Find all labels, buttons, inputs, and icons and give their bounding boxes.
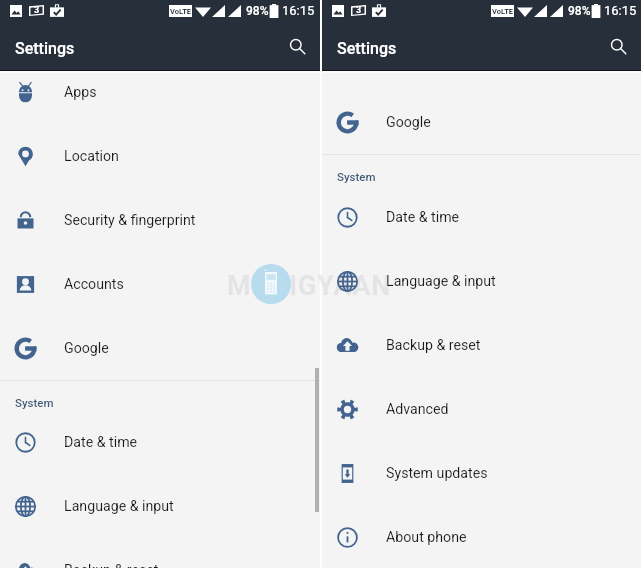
- button[interactable]: Search: [601, 29, 635, 63]
- staticText: Settings: [15, 39, 75, 58]
- staticText: About phone: [386, 529, 467, 546]
- button[interactable]: Location: [0, 124, 320, 188]
- button[interactable]: Date & time: [322, 185, 641, 249]
- staticText: Language & input: [386, 273, 496, 290]
- button[interactable]: Google: [322, 90, 641, 154]
- staticText: Backup & reset: [386, 337, 481, 354]
- staticText: Google: [386, 114, 431, 131]
- button[interactable]: Apps: [0, 60, 320, 124]
- button[interactable]: About phone: [322, 505, 641, 568]
- button[interactable]: Search: [280, 29, 314, 63]
- button[interactable]: Google: [0, 316, 320, 380]
- staticText: 16:15: [604, 3, 637, 18]
- button[interactable]: Accounts: [0, 252, 320, 316]
- button[interactable]: Security & fingerprint: [0, 188, 320, 252]
- button[interactable]: Date & time: [0, 410, 320, 474]
- staticText: VoLTE: [492, 7, 514, 16]
- button[interactable]: Language & input: [322, 249, 641, 313]
- staticText: Apps: [64, 84, 97, 101]
- staticText: 3: [34, 5, 40, 16]
- staticText: Security & fingerprint: [64, 212, 196, 229]
- staticText: 16:15: [282, 3, 315, 18]
- staticText: Date & time: [64, 434, 138, 451]
- staticText: Backup & reset: [64, 562, 159, 568]
- staticText: Language & input: [64, 498, 174, 515]
- button[interactable]: Backup & reset: [0, 538, 320, 568]
- staticText: Accounts: [64, 276, 124, 293]
- staticText: Location: [64, 148, 119, 165]
- staticText: Settings: [337, 39, 397, 58]
- button[interactable]: Language & input: [0, 474, 320, 538]
- staticText: 98%: [246, 4, 269, 18]
- staticText: 98%: [568, 4, 591, 18]
- button[interactable]: System updates: [322, 441, 641, 505]
- staticText: Google: [64, 340, 109, 357]
- button[interactable]: Advanced: [322, 377, 641, 441]
- staticText: VoLTE: [170, 7, 192, 16]
- staticText: Advanced: [386, 401, 449, 418]
- staticText: System: [337, 170, 376, 183]
- staticText: Date & time: [386, 209, 460, 226]
- staticText: System updates: [386, 465, 488, 482]
- staticText: 3: [356, 5, 362, 16]
- staticText: System: [15, 396, 54, 409]
- staticText: MOBIGYAAN: [227, 270, 392, 302]
- button[interactable]: Backup & reset: [322, 313, 641, 377]
